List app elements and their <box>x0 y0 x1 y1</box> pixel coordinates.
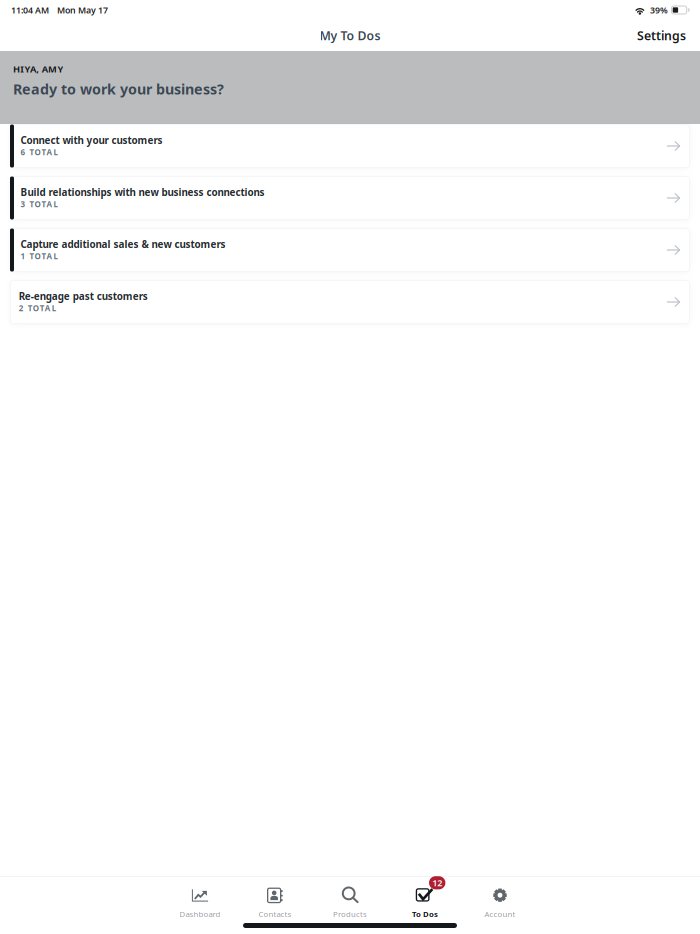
staticText: Products <box>333 909 367 919</box>
staticText: Capture additional sales & new customers <box>20 237 225 251</box>
staticText: Dashboard <box>179 909 220 919</box>
staticText: Contacts <box>258 909 291 919</box>
button[interactable]: Dashboard <box>162 887 237 919</box>
staticText: 39% <box>650 4 668 16</box>
staticText: 12 <box>432 877 442 889</box>
staticText: Build relationships with new business co… <box>20 185 264 199</box>
staticText: Re-engage past customers <box>19 289 148 303</box>
staticText: HIYA, AMY <box>13 62 63 75</box>
staticText: Account <box>484 909 515 919</box>
staticText: Settings <box>637 27 686 44</box>
button[interactable]: Capture additional sales & new customers <box>10 228 690 272</box>
staticText: 2 TOTAL <box>19 303 56 314</box>
button[interactable]: Products <box>312 887 387 919</box>
staticText: 1 TOTAL <box>20 251 57 262</box>
staticText: 6 TOTAL <box>20 147 57 158</box>
staticText: 11:04 AM <box>11 4 49 16</box>
button[interactable]: Build relationships with new business co… <box>10 176 690 220</box>
button[interactable]: Account <box>462 887 537 919</box>
button[interactable]: Settings <box>623 19 700 52</box>
button[interactable]: To Dos <box>387 887 462 919</box>
button[interactable]: Connect with your customers <box>10 124 690 168</box>
staticText: 3 TOTAL <box>20 199 57 210</box>
button[interactable]: Contacts <box>237 887 312 919</box>
staticText: Ready to work your business? <box>13 79 224 99</box>
staticText: Mon May 17 <box>57 4 108 16</box>
button[interactable]: Re-engage past customers <box>10 280 690 324</box>
staticText: My To Dos <box>319 27 380 44</box>
staticText: To Dos <box>412 909 438 919</box>
staticText: Connect with your customers <box>20 133 162 147</box>
